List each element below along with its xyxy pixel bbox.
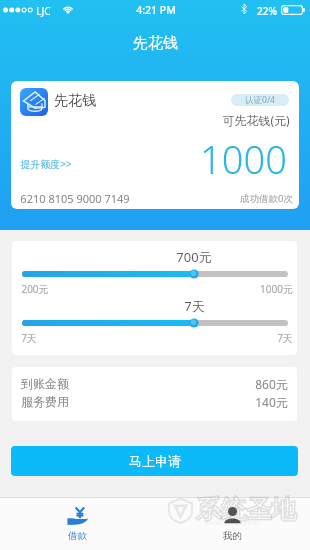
staticText: 成功借款0次 [240, 192, 293, 205]
staticText: 860元 [255, 376, 288, 392]
staticText: 22% [257, 4, 277, 18]
staticText: 7天 [277, 331, 293, 345]
staticText: 先花钱 [54, 92, 96, 110]
staticText: 我的 [223, 530, 242, 542]
staticText: www.xp885.com [204, 518, 259, 528]
staticText: 200元 [21, 282, 49, 296]
button[interactable]: 提升额度>> [20, 157, 72, 171]
staticText: 1000元 [260, 282, 293, 296]
staticText: 马上申请 [129, 453, 181, 469]
staticText: 1000 [200, 133, 287, 185]
staticText: 系统圣地 [196, 494, 296, 525]
staticText: 借款 [68, 530, 87, 542]
staticText: 服务费用 [21, 394, 69, 409]
staticText: 可先花钱(元) [222, 112, 290, 128]
button[interactable]: 马上申请 [11, 446, 298, 476]
staticText: 700元 [176, 248, 212, 266]
staticText: 提升额度>> [20, 157, 72, 171]
staticText: 7天 [184, 297, 205, 315]
staticText: 到账金额 [21, 376, 69, 391]
staticText: 140元 [255, 394, 288, 410]
button[interactable]: 我的 [155, 498, 310, 542]
staticText: 认证0/4 [245, 94, 275, 106]
staticText: 4:21 PM [136, 3, 176, 17]
staticText: 7天 [21, 331, 37, 345]
staticText: 6210 8105 9000 7149 [20, 191, 130, 206]
staticText: LJC [36, 4, 51, 18]
staticText: 先花钱 [133, 34, 178, 53]
button[interactable]: 借款 [0, 498, 155, 542]
